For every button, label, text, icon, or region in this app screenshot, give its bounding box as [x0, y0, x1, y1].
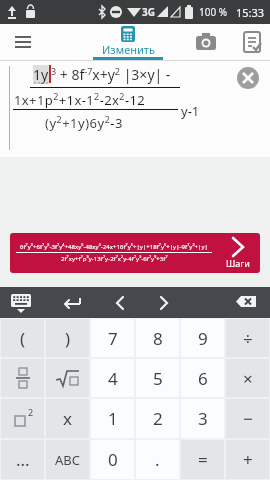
button[interactable]: 6f⁷y³+6f⁷y⁵-3f⁷y⁴+48xy⁵-48xy³-24x+16f⁷y⁵…: [10, 233, 260, 273]
button[interactable]: ): [46, 319, 89, 357]
button[interactable]: [234, 291, 258, 315]
button[interactable]: −: [226, 399, 269, 438]
staticText: 3G: [142, 5, 155, 19]
button[interactable]: (: [1, 319, 44, 357]
button[interactable]: =: [181, 440, 224, 479]
button[interactable]: [8, 290, 34, 316]
button[interactable]: 3: [181, 399, 224, 438]
staticText: 2f⁷xy+f⁷p³y-13f⁷y-2f⁷x²y-4f⁷y³-6f⁷y⁵+3f⁷: [61, 255, 168, 263]
staticText: 1: [108, 407, 118, 430]
staticText: +: [243, 448, 253, 471]
button[interactable]: +: [226, 440, 269, 479]
button[interactable]: 8: [136, 319, 179, 357]
button[interactable]: 6: [181, 359, 224, 397]
button[interactable]: 5: [136, 359, 179, 397]
button[interactable]: [194, 30, 218, 54]
staticText: 3 + 8f-7x+y2 |3×y| -: [51, 65, 171, 84]
staticText: 15:33: [236, 5, 265, 20]
button[interactable]: ...: [1, 440, 44, 479]
button[interactable]: ÷: [226, 319, 269, 357]
staticText: 9: [198, 327, 208, 350]
button[interactable]: ×: [226, 359, 269, 397]
button[interactable]: [110, 293, 130, 313]
button[interactable]: 0: [91, 440, 134, 479]
staticText: ABC: [55, 451, 80, 469]
staticText: (: [20, 327, 26, 350]
staticText: −: [243, 407, 253, 430]
staticText: x: [63, 407, 72, 430]
button[interactable]: 2: [1, 399, 44, 438]
button[interactable]: [12, 30, 36, 54]
staticText: ...: [16, 448, 30, 471]
button[interactable]: [153, 293, 173, 313]
staticText: ÷: [243, 327, 253, 350]
button[interactable]: 9: [181, 319, 224, 357]
button[interactable]: [240, 30, 264, 54]
staticText: 2: [153, 407, 163, 430]
button[interactable]: [1, 359, 44, 397]
staticText: y-1: [181, 102, 200, 120]
staticText: 7: [108, 327, 118, 350]
staticText: ×: [243, 367, 253, 390]
button[interactable]: 2: [136, 399, 179, 438]
button[interactable]: [237, 67, 259, 89]
button[interactable]: .: [136, 440, 179, 479]
staticText: =: [198, 448, 208, 471]
staticText: 5: [153, 367, 163, 390]
button[interactable]: ABC: [46, 440, 89, 479]
staticText: 2: [28, 406, 34, 418]
staticText: 8: [153, 327, 163, 350]
button[interactable]: 7: [91, 319, 134, 357]
staticText: 1x+1p2+1x-12-2x2-12: [14, 90, 146, 109]
staticText: 1y: [33, 65, 49, 84]
staticText: 3: [198, 407, 208, 430]
staticText: Изменить: [102, 42, 155, 57]
button[interactable]: [60, 291, 84, 315]
staticText: 100 %: [199, 5, 228, 19]
button[interactable]: 4: [91, 359, 134, 397]
staticText: ): [65, 327, 71, 350]
staticText: Шаги: [226, 257, 250, 269]
button[interactable]: 1: [91, 399, 134, 438]
staticText: 4: [108, 367, 118, 390]
staticText: 0: [108, 448, 118, 471]
staticText: 6: [198, 367, 208, 390]
button[interactable]: [46, 359, 89, 397]
staticText: 6f⁷y³+6f⁷y⁵-3f⁷y⁴+48xy⁵-48xy³-24x+16f⁷y⁵…: [20, 243, 208, 251]
button[interactable]: x: [46, 399, 89, 438]
staticText: (y2+1y)6y2-3: [45, 113, 123, 132]
staticText: .: [155, 448, 160, 471]
button[interactable]: Изменить: [93, 24, 163, 60]
